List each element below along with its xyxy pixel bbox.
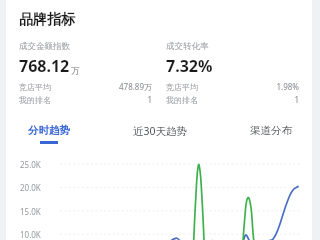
staticText: 1.98% (276, 81, 299, 92)
staticText: 近30天趋势 (133, 124, 188, 138)
staticText: 渠道分布 (250, 124, 292, 137)
button[interactable]: 近30天趋势 (131, 122, 190, 147)
staticText: 成交转化率 (166, 41, 209, 52)
staticText: 768.12 (19, 55, 70, 77)
staticText: 成交金额指数 (19, 41, 70, 52)
button[interactable]: 分时趋势 (26, 122, 72, 146)
staticText: 竞店平均 (19, 82, 51, 92)
staticText: 15.0K (20, 206, 41, 217)
staticText: 竞店平均 (166, 82, 198, 92)
staticText: 7.32% (166, 55, 213, 77)
staticText: 25.0K (20, 159, 41, 170)
button[interactable]: 成交金额指数 (19, 41, 152, 105)
staticText: 20.0K (20, 182, 41, 193)
staticText: 品牌指标 (19, 11, 75, 29)
staticText: 分时趋势 (28, 124, 70, 137)
staticText: 我的排名 (19, 95, 51, 105)
staticText: 1 (294, 94, 299, 105)
button[interactable]: 成交转化率 (166, 41, 299, 105)
button[interactable]: 渠道分布 (248, 122, 294, 146)
staticText: 10.0K (20, 229, 41, 240)
staticText: 我的排名 (166, 95, 198, 105)
staticText: 478.89万 (118, 81, 152, 92)
staticText: 万 (71, 65, 80, 76)
staticText: 1 (147, 94, 152, 105)
